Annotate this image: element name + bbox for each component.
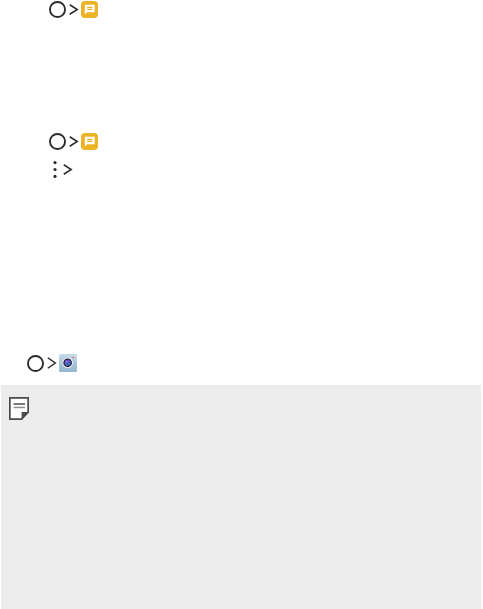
other: Note	[9, 397, 29, 420]
other: Home key	[49, 133, 66, 150]
other: More options	[53, 161, 57, 178]
button[interactable]: Home key then Messages	[49, 1, 98, 18]
other: Camera app	[59, 354, 77, 372]
other: Messages app	[81, 1, 98, 18]
button[interactable]: Home key then Camera	[27, 354, 77, 372]
button[interactable]: More options then next	[53, 161, 72, 178]
other: Home key	[27, 355, 44, 372]
other: Home key	[49, 1, 66, 18]
button[interactable]: Home key then Messages	[49, 133, 98, 150]
other: Messages app	[81, 133, 98, 150]
